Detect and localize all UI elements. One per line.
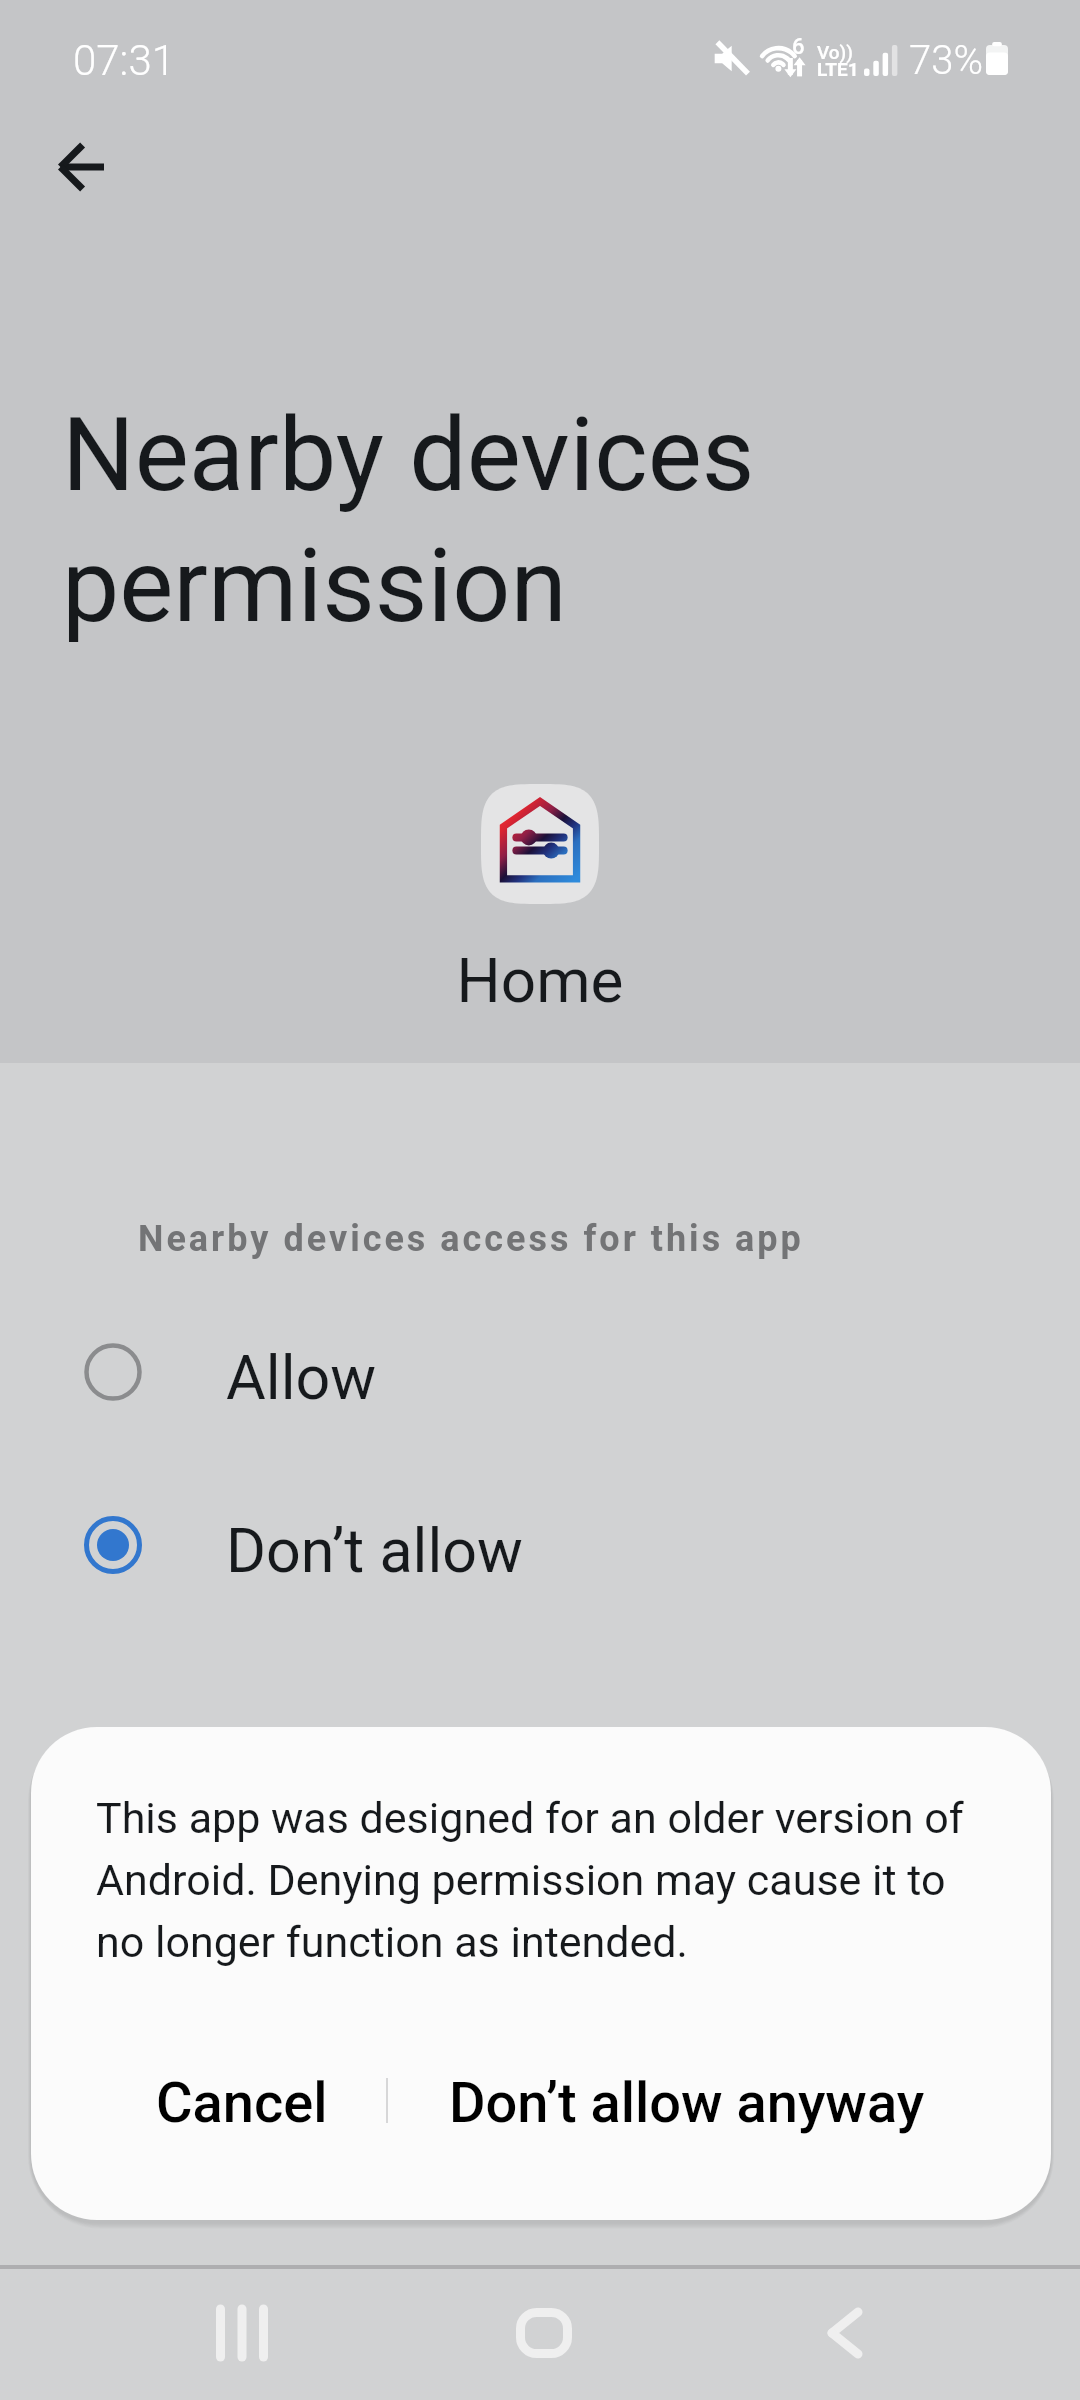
button[interactable]: Home xyxy=(474,2265,614,2400)
staticText: This app was designed for an older versi… xyxy=(96,1793,986,1968)
staticText: 07:31 xyxy=(73,36,176,85)
staticText: 73% xyxy=(909,37,983,84)
staticText: LTE1 xyxy=(817,58,859,80)
button[interactable]: Navigate up xyxy=(35,122,125,212)
staticText: Nearby devices permission xyxy=(62,395,755,646)
button[interactable]: Don’t allow anyway xyxy=(417,2043,957,2163)
button[interactable]: Allow xyxy=(0,1314,1080,1430)
staticText: Nearby devices access for this app xyxy=(138,1218,804,1260)
staticText: Allow xyxy=(226,1342,377,1413)
staticText: Don’t allow xyxy=(226,1515,523,1586)
staticText: Home xyxy=(0,944,1080,1017)
staticText: Vo)) xyxy=(817,41,853,63)
staticText: 6 xyxy=(792,34,805,60)
button[interactable]: Back xyxy=(775,2265,915,2400)
staticText: Cancel xyxy=(156,2070,328,2136)
staticText: Don’t allow anyway xyxy=(449,2070,925,2136)
button[interactable]: Don’t allow xyxy=(0,1487,1080,1603)
button[interactable]: Recent apps xyxy=(172,2265,312,2400)
button[interactable]: Cancel xyxy=(117,2043,367,2163)
